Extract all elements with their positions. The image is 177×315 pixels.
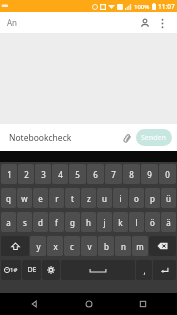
button[interactable]: t — [65, 188, 80, 208]
button[interactable]: ä — [161, 212, 176, 232]
staticText: o — [134, 193, 139, 204]
button[interactable]: Symbols — [1, 260, 21, 280]
button[interactable]: 0 — [159, 164, 176, 184]
staticText: 3 — [41, 169, 46, 180]
staticText: , — [143, 265, 146, 276]
button[interactable]: u — [97, 188, 112, 208]
staticText: Senden — [141, 133, 167, 143]
staticText: f — [55, 217, 58, 228]
button[interactable]: g — [65, 212, 80, 232]
staticText: 6 — [93, 169, 98, 180]
staticText: u — [102, 193, 107, 204]
staticText: ü — [166, 193, 171, 204]
button[interactable]: ü — [161, 188, 176, 208]
button[interactable]: 8 — [123, 164, 140, 184]
staticText: c — [70, 241, 74, 252]
button[interactable]: Senden — [136, 129, 172, 146]
staticText: 1 — [7, 169, 12, 180]
staticText: p — [150, 193, 155, 204]
button[interactable]: Home — [69, 293, 109, 315]
button[interactable]: 7 — [105, 164, 122, 184]
button[interactable]: 1 — [1, 164, 17, 184]
staticText: n — [121, 241, 126, 252]
staticText: e — [38, 193, 43, 204]
button[interactable]: Settings — [42, 260, 60, 280]
button[interactable]: 9 — [141, 164, 158, 184]
staticText: l — [135, 217, 138, 228]
staticText: 7 — [111, 169, 116, 180]
button[interactable]: j — [97, 212, 112, 232]
button[interactable]: q — [1, 188, 16, 208]
button[interactable]: 4 — [52, 164, 68, 184]
button[interactable]: ö — [145, 212, 160, 232]
staticText: 9 — [147, 169, 152, 180]
staticText: d — [38, 217, 43, 228]
button[interactable]: r — [49, 188, 64, 208]
staticText: i — [119, 193, 122, 204]
button[interactable]: v — [81, 236, 97, 256]
button[interactable]: h — [81, 212, 96, 232]
button[interactable]: n — [115, 236, 131, 256]
button[interactable]: Enter — [153, 260, 176, 280]
staticText: x — [53, 241, 58, 252]
button[interactable]: Back — [14, 293, 54, 315]
button[interactable]: Contacts — [136, 14, 154, 32]
button[interactable]: o — [129, 188, 144, 208]
button[interactable]: p — [145, 188, 160, 208]
staticText: 11:07 — [158, 2, 175, 11]
staticText: ö — [150, 217, 155, 228]
button[interactable]: x — [47, 236, 63, 256]
staticText: DE — [27, 265, 37, 275]
button[interactable]: l — [129, 212, 144, 232]
button[interactable]: Space — [61, 260, 135, 280]
button[interactable]: f — [49, 212, 64, 232]
staticText: 1# — [10, 266, 18, 274]
button[interactable]: Recents — [123, 293, 163, 315]
button[interactable]: b — [98, 236, 114, 256]
staticText: 100% — [134, 3, 150, 11]
staticText: ä — [166, 217, 171, 228]
staticText: z — [87, 193, 91, 204]
button[interactable]: c — [64, 236, 80, 256]
button[interactable]: More options — [154, 15, 170, 31]
staticText: w — [21, 193, 28, 204]
button[interactable]: Backspace — [149, 236, 176, 256]
button[interactable]: y — [30, 236, 46, 256]
staticText: 8 — [129, 169, 134, 180]
staticText: h — [86, 217, 91, 228]
staticText: 4 — [58, 169, 63, 180]
button[interactable]: 6 — [87, 164, 104, 184]
staticText: y — [36, 241, 41, 252]
button[interactable]: m — [132, 236, 148, 256]
button[interactable]: z — [81, 188, 96, 208]
button[interactable]: 2 — [18, 164, 34, 184]
button[interactable]: s — [17, 212, 32, 232]
staticText: m — [136, 241, 144, 252]
button[interactable]: i — [113, 188, 128, 208]
button[interactable]: 3 — [35, 164, 51, 184]
button[interactable]: DE — [22, 260, 41, 280]
button[interactable]: 5 — [69, 164, 86, 184]
staticText: v — [87, 241, 92, 252]
button[interactable]: Shift — [1, 236, 29, 256]
staticText: t — [71, 193, 74, 204]
staticText: a — [6, 217, 11, 228]
button[interactable]: k — [113, 212, 128, 232]
staticText: r — [55, 193, 59, 204]
staticText: An — [7, 17, 18, 28]
staticText: k — [118, 217, 123, 228]
staticText: 0 — [165, 169, 170, 180]
staticText: q — [6, 193, 11, 204]
staticText: s — [23, 217, 27, 228]
staticText: b — [104, 241, 109, 252]
button[interactable]: , — [136, 260, 152, 280]
staticText: Notebookcheck — [9, 132, 72, 144]
staticText: j — [103, 217, 106, 228]
staticText: 2 — [24, 169, 29, 180]
button[interactable]: d — [33, 212, 48, 232]
button[interactable]: w — [17, 188, 32, 208]
button[interactable]: e — [33, 188, 48, 208]
button[interactable]: Attach — [118, 129, 136, 147]
staticText: 5 — [75, 169, 80, 180]
button[interactable]: a — [1, 212, 16, 232]
